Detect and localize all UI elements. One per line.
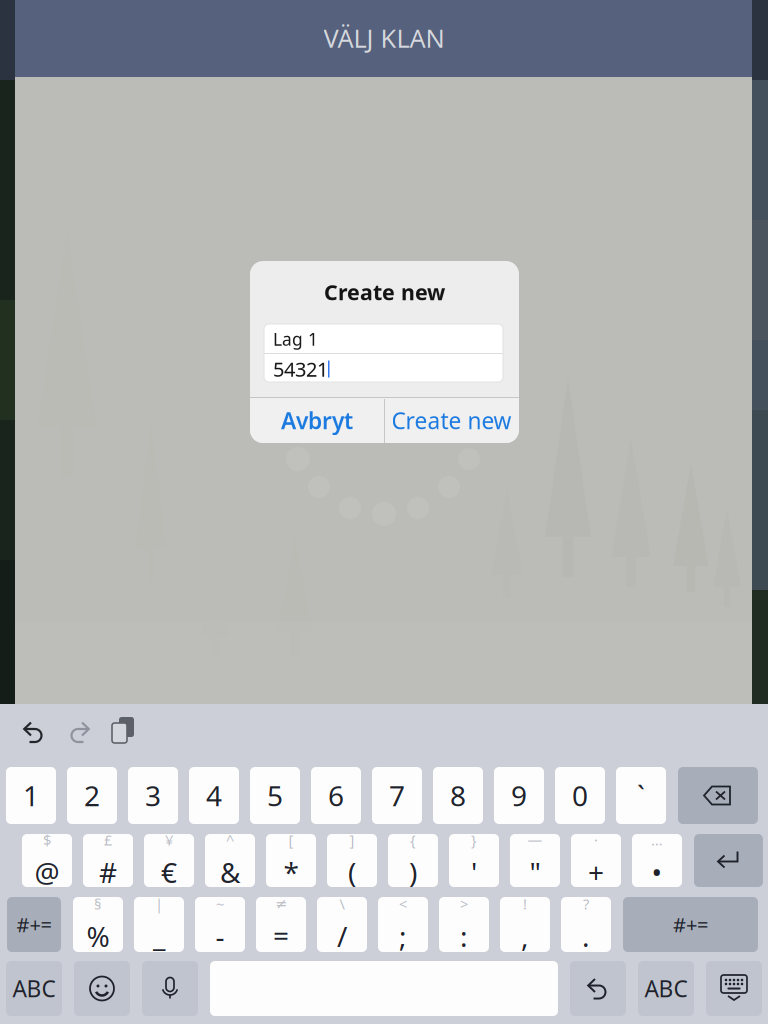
button[interactable]: Return	[694, 834, 763, 887]
button[interactable]: Delete	[678, 767, 758, 824]
staticText: ~	[216, 894, 224, 914]
button[interactable]: Undo	[16, 714, 52, 750]
staticText: ·	[594, 830, 598, 850]
staticText: /	[337, 918, 347, 955]
staticText: -	[215, 918, 224, 955]
staticText: …	[651, 830, 663, 850]
button[interactable]: ;	[378, 897, 428, 952]
staticText: *	[283, 854, 298, 891]
staticText: }	[471, 830, 477, 850]
staticText: 7	[389, 777, 405, 814]
button[interactable]: /	[317, 897, 367, 952]
button[interactable]: Hide keyboard	[706, 961, 762, 1016]
button[interactable]: =	[256, 897, 306, 952]
button[interactable]: Paste	[105, 712, 141, 748]
button[interactable]: 2	[67, 767, 117, 824]
staticText: £	[104, 830, 112, 850]
button[interactable]: &	[205, 834, 255, 887]
button[interactable]: *	[266, 834, 316, 887]
staticText: ,	[521, 918, 529, 955]
staticText: 2	[84, 777, 100, 814]
button[interactable]: @	[22, 834, 72, 887]
button[interactable]: `	[616, 767, 666, 824]
button[interactable]: 1	[6, 767, 56, 824]
button[interactable]: _	[134, 897, 184, 952]
staticText: )	[409, 854, 417, 891]
button[interactable]: (	[327, 834, 377, 887]
button[interactable]: ,	[500, 897, 550, 952]
button[interactable]: -	[195, 897, 245, 952]
button[interactable]: )	[388, 834, 438, 887]
staticText: !	[523, 894, 527, 914]
button[interactable]: .	[561, 897, 611, 952]
staticText: $	[43, 830, 51, 850]
button[interactable]: :	[439, 897, 489, 952]
staticText: #+=	[16, 911, 51, 938]
button[interactable]: 6	[311, 767, 361, 824]
button[interactable]: Avbryt	[250, 398, 384, 443]
staticText: Avbryt	[281, 405, 353, 435]
staticText: '	[471, 854, 477, 891]
staticText: _	[153, 918, 165, 955]
button[interactable]: VÄLJ KLAN	[284, 18, 484, 58]
button[interactable]: #	[83, 834, 133, 887]
staticText: #	[99, 854, 117, 891]
button[interactable]: 7	[372, 767, 422, 824]
staticText: •	[651, 854, 662, 891]
button[interactable]: #+=	[623, 897, 758, 952]
button[interactable]: Create new	[384, 398, 519, 443]
staticText: :	[460, 918, 468, 955]
staticText: `	[637, 777, 645, 814]
staticText: {	[410, 830, 416, 850]
button[interactable]: +	[571, 834, 621, 887]
button[interactable]: 8	[433, 767, 483, 824]
button[interactable]: 0	[555, 767, 605, 824]
button[interactable]: ABC	[638, 961, 694, 1016]
staticText: #+=	[673, 911, 708, 938]
staticText: |	[155, 894, 163, 914]
button[interactable]: %	[73, 897, 123, 952]
staticText: <	[399, 894, 407, 914]
button[interactable]: #+=	[7, 897, 61, 952]
button[interactable]: •	[632, 834, 682, 887]
button[interactable]: ABC	[6, 961, 62, 1016]
staticText: =	[273, 916, 289, 953]
button[interactable]: 3	[128, 767, 178, 824]
button[interactable]: 4	[189, 767, 239, 824]
button[interactable]: Emoji	[74, 961, 130, 1016]
staticText: @	[34, 854, 59, 891]
staticText: ABC	[644, 973, 687, 1003]
button[interactable]: 9	[494, 767, 544, 824]
staticText: —	[527, 830, 542, 850]
staticText: Create new	[391, 405, 511, 435]
button[interactable]: Redo	[61, 714, 97, 750]
staticText: ]	[349, 830, 354, 850]
staticText: 54321	[273, 356, 328, 382]
staticText: 6	[328, 777, 344, 814]
staticText: %	[86, 918, 109, 955]
button[interactable]: Dictation	[142, 961, 198, 1016]
staticText: 1	[23, 777, 39, 814]
staticText: 5	[267, 777, 283, 814]
staticText: 3	[145, 777, 161, 814]
button[interactable]: Undo	[570, 961, 626, 1016]
staticText: (	[348, 854, 356, 891]
staticText: ABC	[12, 973, 55, 1003]
staticText: ≠	[275, 896, 287, 912]
button[interactable]: "	[510, 834, 560, 887]
button[interactable]: €	[144, 834, 194, 887]
staticText: ¥	[165, 830, 173, 850]
staticText: ?	[583, 894, 589, 914]
staticText: ^	[226, 830, 234, 850]
button[interactable]: 5	[250, 767, 300, 824]
staticText: §	[94, 894, 102, 914]
button[interactable]: '	[449, 834, 499, 887]
staticText: ;	[399, 918, 407, 955]
staticText: VÄLJ KLAN	[323, 21, 444, 55]
staticText: Lag 1	[273, 327, 318, 350]
staticText: 4	[206, 777, 222, 814]
staticText: €	[161, 854, 177, 891]
staticText: [	[288, 830, 293, 850]
